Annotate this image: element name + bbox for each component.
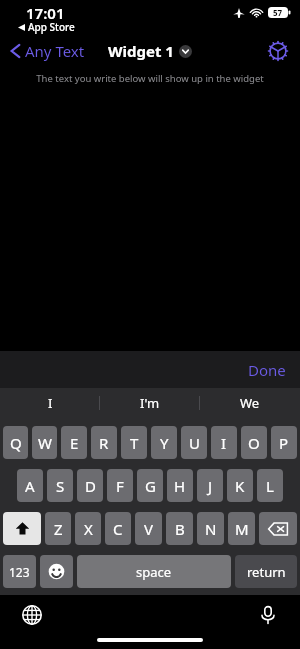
button[interactable]: W xyxy=(32,426,57,459)
button[interactable]: S xyxy=(47,469,73,502)
button[interactable]: I'm xyxy=(100,388,200,418)
staticText: D xyxy=(85,476,96,496)
staticText: Done xyxy=(248,360,286,380)
staticText: The text you write below will show up in… xyxy=(36,72,264,85)
button[interactable]: X xyxy=(75,512,101,545)
button[interactable]: B xyxy=(166,512,193,545)
button[interactable]: G xyxy=(137,469,163,502)
button[interactable]: Change keyboard language xyxy=(18,601,46,629)
button[interactable]: 123 xyxy=(3,555,36,588)
button[interactable]: H xyxy=(167,469,193,502)
button[interactable]: L xyxy=(257,469,283,502)
staticText: A xyxy=(25,476,35,496)
button[interactable]: I xyxy=(0,388,100,418)
button[interactable]: We xyxy=(200,388,300,418)
staticText: Z xyxy=(54,519,63,539)
staticText: I'm xyxy=(140,394,160,412)
button[interactable]: space xyxy=(77,555,231,588)
staticText: Q xyxy=(10,433,22,453)
button[interactable]: Emoji xyxy=(40,555,73,588)
button[interactable]: Z xyxy=(45,512,71,545)
button[interactable]: Dictation xyxy=(254,601,282,629)
button[interactable]: C xyxy=(105,512,131,545)
staticText: return xyxy=(247,563,286,581)
staticText: C xyxy=(113,519,123,539)
staticText: 123 xyxy=(9,564,30,580)
staticText: J xyxy=(208,476,213,496)
button[interactable]: Q xyxy=(3,426,28,459)
staticText: P xyxy=(279,433,289,453)
button[interactable]: K xyxy=(227,469,253,502)
staticText: F xyxy=(116,476,124,496)
staticText: S xyxy=(56,476,65,496)
staticText: U xyxy=(189,433,200,453)
staticText: R xyxy=(99,433,109,453)
button[interactable]: Any Text xyxy=(7,38,88,64)
button[interactable]: O xyxy=(241,426,267,459)
staticText: K xyxy=(235,476,245,496)
staticText: L xyxy=(266,476,274,496)
button[interactable]: P xyxy=(271,426,297,459)
button[interactable]: I xyxy=(211,426,237,459)
staticText: Widget 1 xyxy=(108,41,174,61)
button[interactable]: V xyxy=(135,512,162,545)
button[interactable]: D xyxy=(77,469,103,502)
staticText: We xyxy=(240,394,260,412)
button[interactable]: Y xyxy=(151,426,177,459)
button[interactable]: Shift xyxy=(3,512,41,545)
staticText: X xyxy=(84,519,93,539)
staticText: 57 xyxy=(273,7,283,18)
staticText: N xyxy=(205,519,217,539)
staticText: E xyxy=(70,433,79,453)
button[interactable]: T xyxy=(121,426,147,459)
staticText: G xyxy=(145,476,156,496)
staticText: H xyxy=(174,476,186,496)
button[interactable]: Settings xyxy=(266,39,290,63)
button[interactable]: Done xyxy=(242,356,292,384)
staticText: M xyxy=(235,519,249,539)
button[interactable]: J xyxy=(197,469,223,502)
staticText: 17:01 xyxy=(26,3,65,23)
staticText: B xyxy=(175,519,185,539)
staticText: Any Text xyxy=(25,41,85,61)
button[interactable]: U xyxy=(181,426,207,459)
button[interactable]: M xyxy=(228,512,255,545)
button[interactable]: Widget 1 xyxy=(104,37,196,65)
staticText: space xyxy=(136,563,172,581)
button[interactable]: return xyxy=(235,555,297,588)
staticText: O xyxy=(248,433,260,453)
staticText: I xyxy=(48,394,53,412)
button[interactable]: Backspace xyxy=(259,512,297,545)
staticText: App Store xyxy=(28,20,75,34)
staticText: I xyxy=(221,433,227,453)
staticText: T xyxy=(130,433,139,453)
button[interactable]: N xyxy=(197,512,224,545)
button[interactable]: A xyxy=(17,469,43,502)
button[interactable]: F xyxy=(107,469,133,502)
button[interactable]: E xyxy=(61,426,87,459)
staticText: Y xyxy=(160,433,169,453)
staticText: V xyxy=(144,519,154,539)
button[interactable]: R xyxy=(91,426,117,459)
staticText: W xyxy=(38,433,52,453)
